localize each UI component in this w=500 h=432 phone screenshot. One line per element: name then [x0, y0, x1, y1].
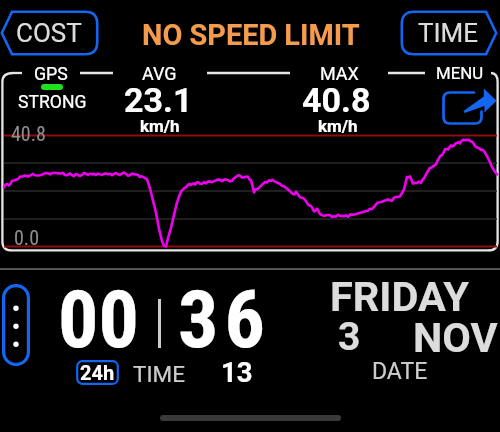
staticText: DATE [372, 358, 428, 385]
staticText: MAX [320, 63, 359, 84]
button[interactable]: More options [2, 284, 30, 366]
staticText: 24h [80, 361, 115, 384]
staticText: 00 [58, 273, 139, 367]
staticText: MENU [436, 63, 484, 83]
staticText: 3 [338, 314, 361, 360]
staticText: 0.0 [14, 226, 40, 249]
staticText: km/h [140, 116, 180, 136]
staticText: TIME [133, 361, 185, 387]
staticText: 40.8 [302, 80, 371, 120]
button[interactable]: TIME [400, 10, 498, 56]
staticText: 13 [221, 356, 253, 388]
staticText: NOV [413, 313, 498, 362]
button[interactable]: COST [0, 10, 99, 56]
staticText: 23.1 [124, 80, 193, 120]
staticText: 36 [178, 273, 271, 367]
staticText: TIME [418, 18, 479, 48]
staticText: STRONG [18, 92, 87, 113]
staticText: COST [16, 18, 82, 48]
staticText: FRIDAY [330, 272, 469, 321]
staticText: 40.8 [11, 122, 46, 145]
staticText: NO SPEED LIMIT [142, 18, 360, 52]
button[interactable]: Menu [441, 87, 498, 126]
staticText: km/h [318, 116, 358, 136]
staticText: GPS [34, 63, 68, 84]
button[interactable]: 24h [76, 360, 119, 385]
staticText: AVG [142, 63, 177, 84]
